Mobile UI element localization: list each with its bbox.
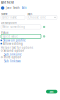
staticText: Description [1,21,17,24]
staticText: Choose one [28,16,46,19]
button[interactable]: Second option [1,50,30,52]
button[interactable]: Add value [43,35,45,37]
staticText: Write something [2,25,25,29]
staticText: Save [49,90,54,93]
staticText: Third option [3,55,21,59]
staticText: Sub link two [4,59,21,63]
staticText: Enter name [2,16,17,19]
staticText: Tags [27,12,32,16]
staticText: Helper text for options [1,46,33,49]
button[interactable]: Third option [1,56,30,58]
staticText: Value [1,31,9,34]
button[interactable]: Edit [21,6,26,10]
button[interactable]: Add value [43,26,45,28]
staticText: Sub link one [4,53,22,56]
staticText: Typed value [2,35,18,38]
button[interactable]: Save [46,90,57,93]
staticText: Edit field [1,1,14,4]
staticText: Show on profile [3,39,26,42]
button[interactable]: Show on profile [1,39,30,41]
button[interactable]: Allow editing [1,43,30,45]
staticText: Edit [21,6,26,10]
staticText: Second option [3,49,24,52]
staticText: Name [1,12,8,16]
staticText: Jane Smith [6,6,20,10]
staticText: Allow editing [3,42,23,45]
